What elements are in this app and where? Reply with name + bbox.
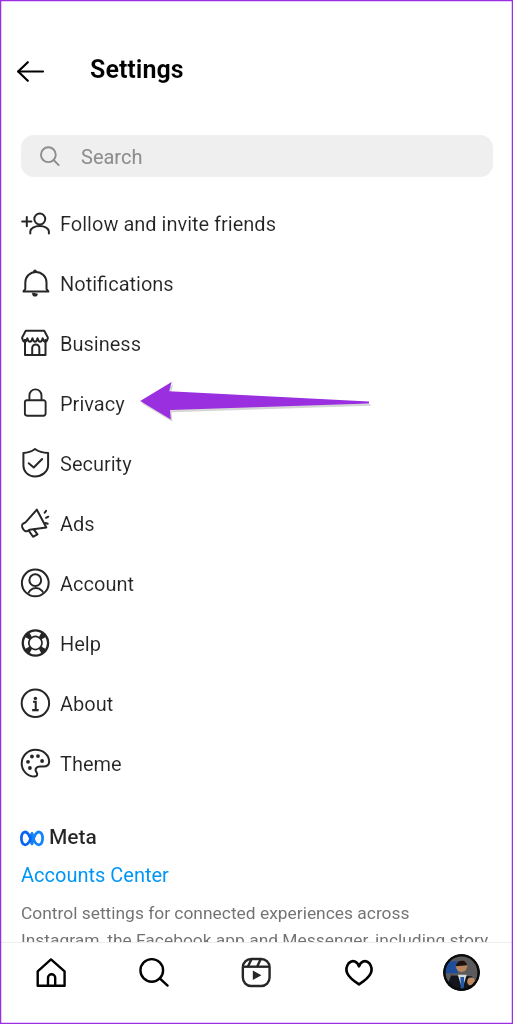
staticText: Meta [49, 825, 97, 850]
staticText: Business [60, 332, 141, 355]
button[interactable]: Home [0, 943, 102, 1002]
staticText: Theme [60, 752, 122, 775]
button[interactable]: Business [0, 313, 513, 373]
button[interactable]: Help [0, 613, 513, 673]
staticText: Account [60, 572, 135, 595]
staticText: Privacy [60, 392, 125, 415]
button[interactable]: Search [102, 943, 204, 1002]
button[interactable]: Privacy [0, 373, 513, 433]
staticText: Help [60, 632, 101, 655]
button[interactable]: Account [0, 553, 513, 613]
staticText: Security [60, 452, 132, 475]
staticText: Follow and invite friends [60, 212, 276, 235]
button[interactable]: Back [8, 49, 52, 93]
button[interactable]: About [0, 673, 513, 733]
button[interactable]: Theme [0, 733, 513, 793]
button[interactable]: Accounts Center [21, 863, 169, 886]
staticText: About [60, 692, 114, 715]
button[interactable]: Security [0, 433, 513, 493]
button[interactable]: Likes [307, 943, 410, 1002]
button[interactable]: Follow and invite friends [0, 193, 513, 253]
staticText: Search [81, 145, 143, 168]
button[interactable]: Ads [0, 493, 513, 553]
staticText: Ads [60, 512, 95, 535]
button[interactable]: Search [21, 135, 493, 177]
button[interactable]: Notifications [0, 253, 513, 313]
staticText: Notifications [60, 272, 174, 295]
button[interactable]: Reels [204, 943, 307, 1002]
staticText: Settings [90, 55, 184, 84]
button[interactable]: Profile [410, 943, 513, 1002]
staticText: Control settings for connected experienc… [21, 903, 495, 950]
